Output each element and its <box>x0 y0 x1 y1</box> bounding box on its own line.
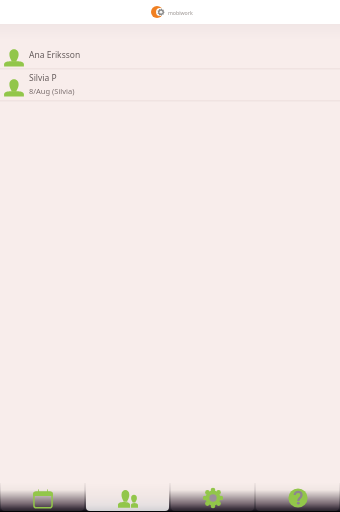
staticText: Silvia P <box>29 72 57 84</box>
button[interactable]: Calendar <box>1 483 84 511</box>
button[interactable]: Help <box>256 483 339 511</box>
button[interactable]: People <box>86 483 169 511</box>
staticText: mobiwork <box>168 9 193 16</box>
button[interactable]: Settings <box>171 483 254 511</box>
button[interactable]: Ana Eriksson <box>0 42 340 68</box>
button[interactable]: Silvia P <box>0 70 340 100</box>
staticText: Ana Eriksson <box>29 49 81 61</box>
staticText: 8/Aug (Silvia) <box>29 86 75 96</box>
